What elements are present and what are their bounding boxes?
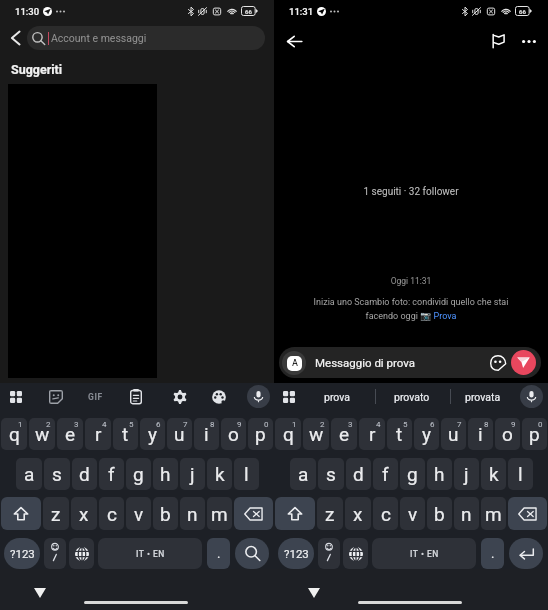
button[interactable]: d bbox=[72, 458, 97, 490]
button[interactable]: s bbox=[44, 458, 70, 490]
button[interactable]: r bbox=[359, 418, 385, 450]
button[interactable]: Backspace bbox=[234, 497, 273, 530]
button[interactable]: q bbox=[275, 418, 301, 450]
button[interactable]: c bbox=[99, 497, 124, 530]
button[interactable]: m bbox=[207, 497, 232, 530]
button[interactable]: p bbox=[522, 418, 547, 450]
button[interactable]: IT • EN bbox=[98, 538, 202, 569]
button[interactable]: e bbox=[57, 418, 83, 450]
button[interactable]: q bbox=[1, 418, 27, 450]
other: Backspace bbox=[518, 507, 537, 521]
button[interactable]: Emoji bbox=[318, 538, 340, 569]
button[interactable]: i bbox=[468, 418, 493, 450]
staticText: f bbox=[382, 463, 389, 485]
button[interactable]: Themes bbox=[207, 383, 230, 410]
staticText: l bbox=[244, 463, 249, 485]
staticText: 2 bbox=[320, 420, 325, 429]
button[interactable]: Settings bbox=[168, 383, 191, 410]
staticText: 4 bbox=[102, 420, 107, 429]
button[interactable]: prova bbox=[302, 383, 372, 410]
button[interactable]: a bbox=[290, 458, 316, 490]
button[interactable]: j bbox=[454, 458, 479, 490]
button[interactable]: x bbox=[71, 497, 97, 530]
staticText: 9 bbox=[511, 420, 516, 429]
button[interactable]: z bbox=[317, 497, 343, 530]
button[interactable]: More options bbox=[514, 26, 544, 56]
button[interactable]: a bbox=[16, 458, 42, 490]
button[interactable]: o bbox=[495, 418, 520, 450]
button[interactable]: . bbox=[481, 538, 504, 569]
button[interactable]: x bbox=[345, 497, 371, 530]
button[interactable]: Apps bbox=[5, 383, 26, 410]
button[interactable]: . bbox=[207, 538, 230, 569]
button[interactable]: b bbox=[427, 497, 452, 530]
button[interactable]: Stickers bbox=[45, 383, 67, 410]
staticText: m bbox=[211, 503, 228, 525]
button[interactable]: o bbox=[221, 418, 246, 450]
button[interactable]: Change language bbox=[69, 538, 94, 569]
button[interactable]: z bbox=[43, 497, 69, 530]
button[interactable]: Report bbox=[483, 26, 513, 56]
button[interactable]: j bbox=[180, 458, 205, 490]
button[interactable]: n bbox=[454, 497, 479, 530]
button[interactable]: ?123 bbox=[4, 538, 40, 569]
button[interactable]: ?123 bbox=[278, 538, 314, 569]
button[interactable]: l bbox=[234, 458, 259, 490]
button[interactable]: u bbox=[441, 418, 466, 450]
button[interactable]: s bbox=[318, 458, 344, 490]
button[interactable]: provata bbox=[453, 383, 513, 410]
button[interactable]: Apps bbox=[279, 383, 299, 410]
button[interactable]: f bbox=[99, 458, 124, 490]
button[interactable]: t bbox=[113, 418, 138, 450]
staticText: 1 bbox=[18, 420, 23, 429]
staticText: 4 bbox=[376, 420, 381, 429]
button[interactable]: Shift bbox=[275, 497, 315, 530]
button[interactable]: Shift bbox=[1, 497, 41, 530]
button[interactable]: Backspace bbox=[508, 497, 547, 530]
button[interactable]: w bbox=[29, 418, 55, 450]
button[interactable]: p bbox=[248, 418, 273, 450]
button[interactable]: Back bbox=[279, 26, 309, 56]
button[interactable]: u bbox=[167, 418, 192, 450]
button[interactable]: g bbox=[400, 458, 425, 490]
button[interactable]: A bbox=[279, 347, 541, 378]
button[interactable]: Back bbox=[3, 26, 27, 50]
button[interactable]: t bbox=[387, 418, 412, 450]
button[interactable]: Hide keyboard bbox=[308, 588, 320, 598]
button[interactable]: y bbox=[414, 418, 439, 450]
button[interactable]: Enter bbox=[509, 538, 543, 569]
button[interactable]: k bbox=[481, 458, 506, 490]
button[interactable]: l bbox=[508, 458, 533, 490]
staticText: z bbox=[51, 503, 61, 525]
button[interactable]: g bbox=[126, 458, 151, 490]
button[interactable]: Sticker bbox=[487, 352, 509, 374]
button[interactable]: Hide keyboard bbox=[34, 588, 46, 598]
button[interactable]: c bbox=[373, 497, 398, 530]
button[interactable]: Send bbox=[511, 350, 536, 375]
button[interactable]: m bbox=[481, 497, 506, 530]
button[interactable]: provato bbox=[378, 383, 446, 410]
button[interactable]: Voice input bbox=[520, 385, 543, 408]
button[interactable]: v bbox=[126, 497, 151, 530]
button[interactable]: IT • EN bbox=[372, 538, 476, 569]
button[interactable]: b bbox=[153, 497, 178, 530]
button[interactable]: h bbox=[153, 458, 178, 490]
button[interactable]: y bbox=[140, 418, 165, 450]
button[interactable]: e bbox=[331, 418, 357, 450]
button[interactable]: v bbox=[400, 497, 425, 530]
button[interactable]: Change language bbox=[343, 538, 368, 569]
button[interactable]: Account e messaggi bbox=[27, 26, 265, 50]
button[interactable]: Voice input bbox=[247, 385, 270, 408]
button[interactable]: f bbox=[373, 458, 398, 490]
button[interactable]: Search bbox=[235, 538, 269, 569]
button[interactable]: n bbox=[180, 497, 205, 530]
button[interactable]: w bbox=[303, 418, 329, 450]
button[interactable]: k bbox=[207, 458, 232, 490]
button[interactable]: r bbox=[85, 418, 111, 450]
button[interactable]: d bbox=[346, 458, 371, 490]
button[interactable]: GIF bbox=[80, 387, 110, 406]
button[interactable]: h bbox=[427, 458, 452, 490]
button[interactable]: Emoji bbox=[44, 538, 66, 569]
button[interactable]: Clipboard bbox=[125, 383, 146, 410]
button[interactable]: i bbox=[194, 418, 219, 450]
